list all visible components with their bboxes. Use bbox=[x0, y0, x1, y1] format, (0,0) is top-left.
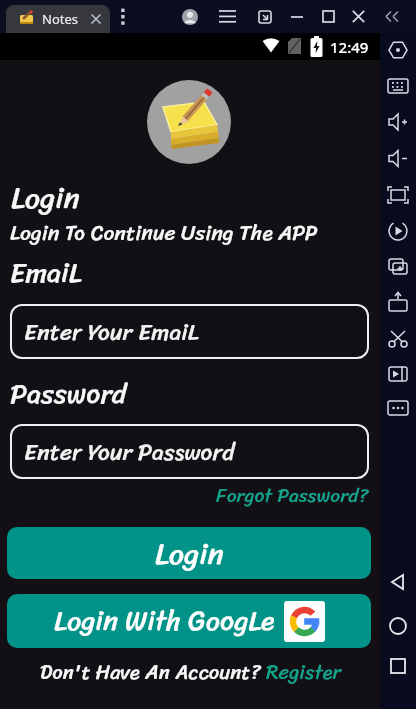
staticText: Login bbox=[155, 527, 224, 579]
staticText: Enter Your Password bbox=[24, 431, 235, 473]
button[interactable] bbox=[352, 10, 365, 23]
staticText: Don't Have An Account? bbox=[40, 654, 266, 690]
button[interactable] bbox=[182, 9, 198, 25]
button[interactable] bbox=[219, 10, 236, 23]
button[interactable] bbox=[91, 14, 101, 24]
button[interactable]: Enter Your Password bbox=[10, 424, 369, 479]
staticText: Login bbox=[11, 171, 80, 224]
button[interactable]: Enter Your EmaiL bbox=[10, 304, 369, 359]
button[interactable]: Login With GoogLe bbox=[7, 594, 371, 648]
button[interactable] bbox=[322, 10, 335, 23]
staticText: Password bbox=[10, 369, 127, 419]
staticText: Notes bbox=[42, 10, 78, 28]
staticText: 12:49 bbox=[330, 37, 369, 57]
button[interactable]: Notes bbox=[6, 5, 110, 33]
button[interactable] bbox=[385, 11, 399, 22]
button[interactable] bbox=[120, 8, 126, 26]
button[interactable] bbox=[258, 10, 272, 24]
button[interactable]: Register bbox=[266, 654, 341, 690]
staticText: EmaiL bbox=[10, 248, 82, 298]
staticText: Login To Continue Using The APP bbox=[10, 214, 318, 252]
staticText: Login With GoogLe bbox=[54, 596, 275, 646]
staticText: Enter Your EmaiL bbox=[24, 311, 199, 353]
button[interactable]: Forgot Password? bbox=[216, 478, 369, 513]
button[interactable]: Login bbox=[7, 527, 371, 579]
